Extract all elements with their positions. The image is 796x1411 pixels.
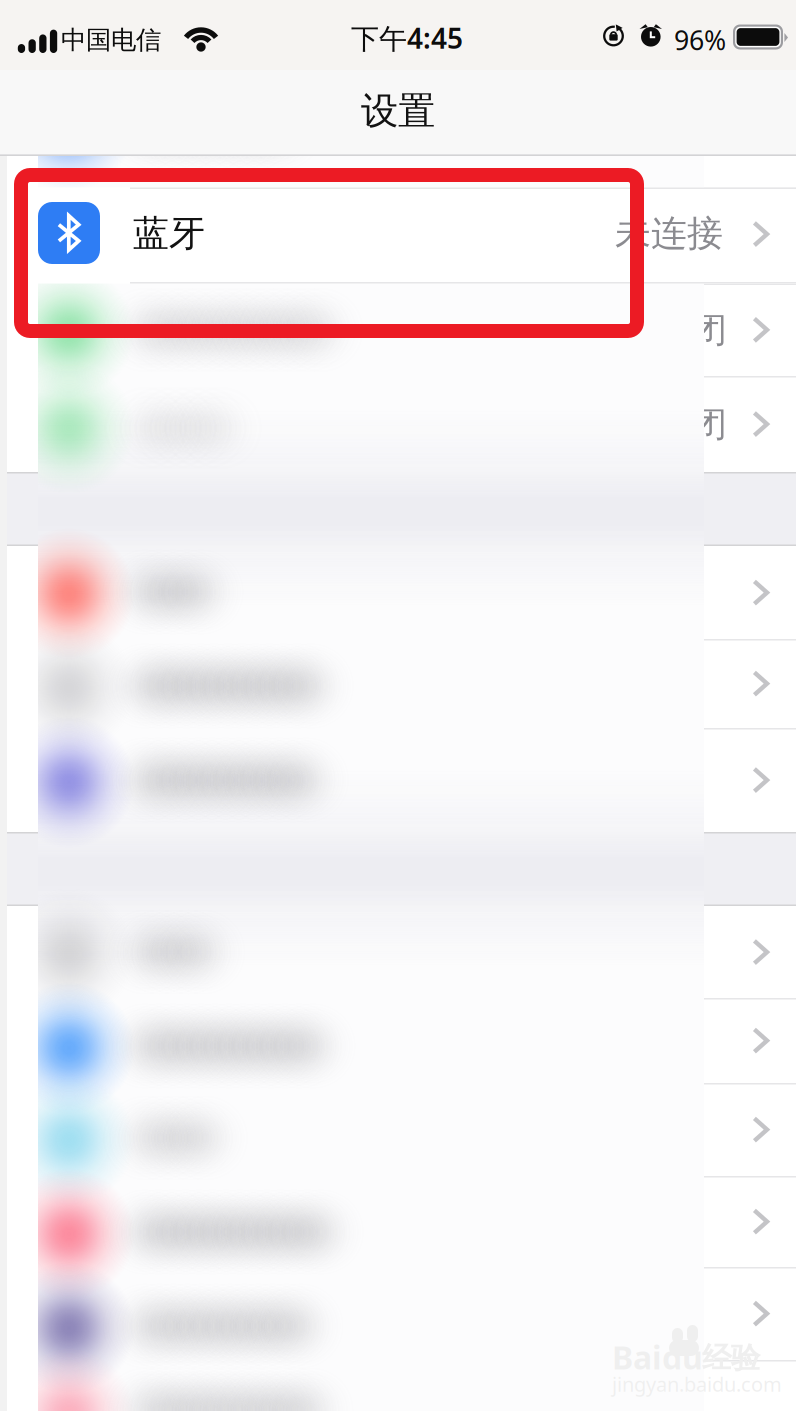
button[interactable]: 蓝牙 (7, 187, 796, 283)
staticText: 经验 (702, 1340, 760, 1376)
button[interactable]: 未连接 (540, 187, 796, 283)
button[interactable] (540, 639, 796, 728)
button[interactable] (540, 906, 796, 998)
button[interactable] (540, 1083, 796, 1176)
staticText: 蓝牙 (133, 211, 205, 256)
staticText: 下午4:45 (351, 19, 463, 57)
button[interactable] (540, 1176, 796, 1267)
staticText: Baidu (612, 1336, 703, 1378)
staticText: 关闭 (655, 308, 727, 352)
button[interactable]: 关闭 (540, 376, 796, 472)
staticText: 未连接 (619, 213, 727, 258)
button[interactable] (540, 1267, 796, 1360)
staticText: jingyan.baidu.com (612, 1371, 782, 1397)
button[interactable] (540, 998, 796, 1083)
button[interactable] (540, 546, 796, 639)
staticText: 中国电信 (61, 24, 161, 55)
staticText: 关闭 (655, 402, 727, 446)
staticText: 设置 (361, 88, 435, 134)
staticText: 96% (674, 22, 726, 58)
button[interactable]: 关闭 (540, 283, 796, 376)
button[interactable] (540, 728, 796, 832)
staticText: 未连接 (615, 211, 723, 256)
